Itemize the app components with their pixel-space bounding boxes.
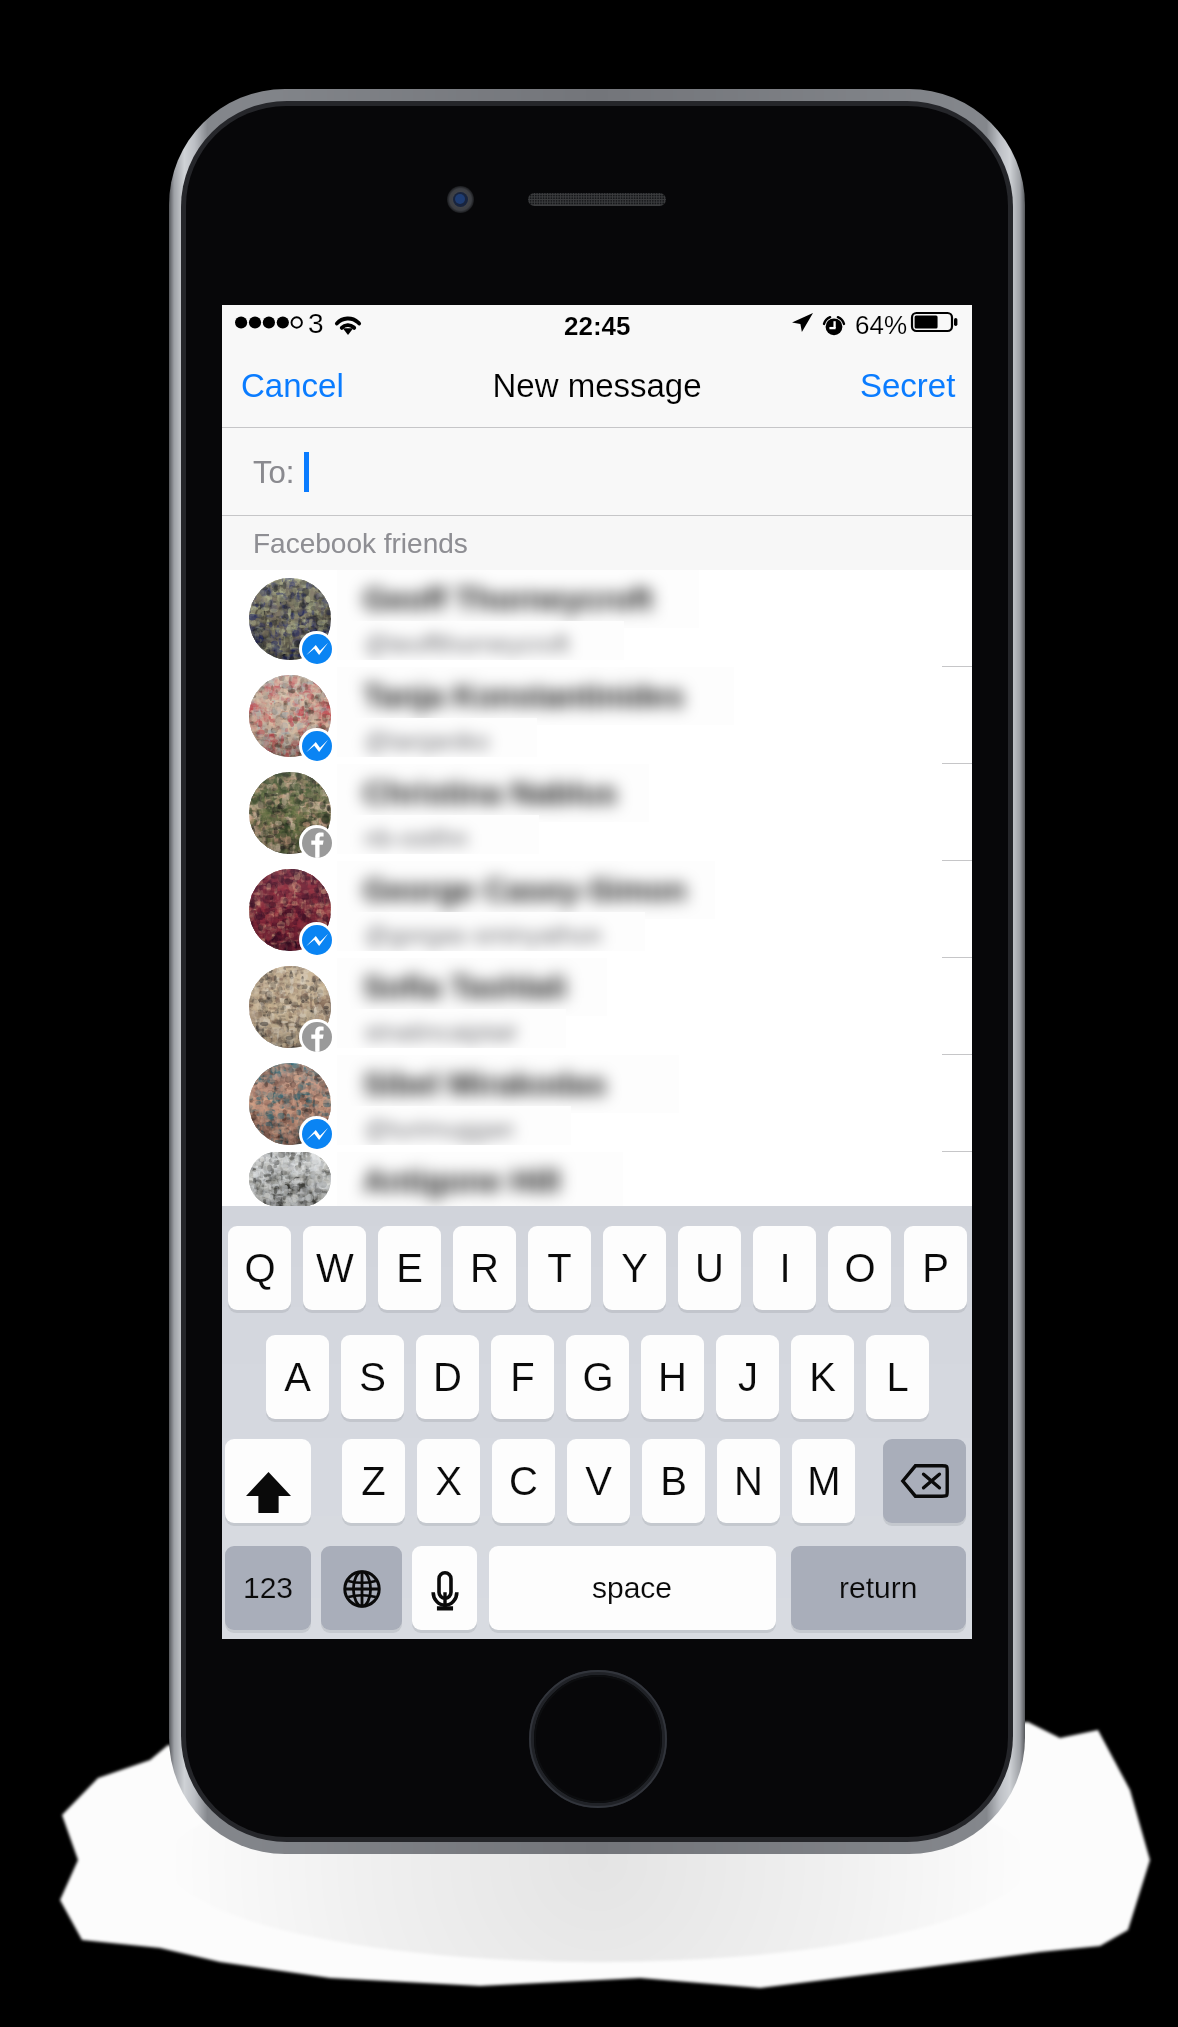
button[interactable]: I xyxy=(753,1226,816,1310)
staticText: space xyxy=(592,1571,673,1605)
staticText: 22:45 xyxy=(564,311,631,340)
staticText: 64% xyxy=(855,310,908,339)
staticText: S xyxy=(359,1355,386,1400)
staticText: W xyxy=(316,1246,354,1291)
button[interactable]: T xyxy=(528,1226,591,1310)
button[interactable]: W xyxy=(303,1226,366,1310)
button[interactable]: Tanja Konstantinides xyxy=(222,667,972,764)
button[interactable]: N xyxy=(717,1439,780,1523)
staticText: L xyxy=(886,1355,909,1400)
button[interactable]: Backspace xyxy=(883,1439,966,1523)
button[interactable]: Shift xyxy=(225,1439,311,1523)
button[interactable]: Y xyxy=(603,1226,666,1310)
staticText: U xyxy=(695,1246,724,1291)
staticText: K xyxy=(809,1355,836,1400)
button[interactable]: J xyxy=(716,1335,779,1419)
staticText: H xyxy=(658,1355,687,1400)
button[interactable]: U xyxy=(678,1226,741,1310)
staticText: Antigone Hill xyxy=(363,1163,561,1199)
staticText: A xyxy=(284,1355,311,1400)
staticText: return xyxy=(839,1571,918,1605)
button[interactable]: Cancel xyxy=(222,352,364,421)
button[interactable]: O xyxy=(828,1226,891,1310)
staticText: @tanjaniko xyxy=(364,727,490,755)
staticText: 3 xyxy=(308,308,324,339)
button[interactable]: Secret xyxy=(840,352,972,421)
staticText: Secret xyxy=(860,367,956,404)
button[interactable]: Sofia Tashlali xyxy=(222,958,972,1055)
staticText: X xyxy=(435,1459,462,1504)
staticText: @teoffthorneycroft xyxy=(364,630,570,658)
staticText: Geoff Thorneycroft xyxy=(363,581,653,617)
button[interactable]: Switch keyboard language xyxy=(321,1546,402,1630)
button[interactable]: E xyxy=(378,1226,441,1310)
staticText: Q xyxy=(244,1246,276,1291)
staticText: B xyxy=(660,1459,687,1504)
staticText: J xyxy=(738,1355,758,1400)
button[interactable]: To: xyxy=(222,428,972,516)
staticText: F xyxy=(510,1355,535,1400)
button[interactable]: George Casey-Simon xyxy=(222,861,972,958)
staticText: O xyxy=(844,1246,876,1291)
button[interactable]: Antigone Hill xyxy=(222,1152,972,1206)
staticText: nb-ostthn xyxy=(364,824,469,852)
staticText: To: xyxy=(253,455,295,490)
staticText: George Casey-Simon xyxy=(363,872,687,908)
button[interactable]: space xyxy=(489,1546,776,1630)
button[interactable]: G xyxy=(566,1335,629,1419)
button[interactable]: L xyxy=(866,1335,929,1419)
staticText: Sofia Tashlali xyxy=(363,969,567,1005)
staticText: V xyxy=(585,1459,612,1504)
staticText: D xyxy=(433,1355,462,1400)
button[interactable]: P xyxy=(904,1226,967,1310)
staticText: New message xyxy=(492,367,702,404)
button[interactable]: V xyxy=(567,1439,630,1523)
staticText: E xyxy=(396,1246,423,1291)
button[interactable]: D xyxy=(416,1335,479,1419)
button[interactable]: Christina Nablus xyxy=(222,764,972,861)
button[interactable]: Z xyxy=(342,1439,405,1523)
button[interactable]: X xyxy=(417,1439,480,1523)
button[interactable]: 123 xyxy=(225,1546,311,1630)
staticText: Facebook friends xyxy=(253,528,468,559)
button[interactable]: A xyxy=(266,1335,329,1419)
button[interactable]: Q xyxy=(228,1226,291,1310)
staticText: @gorgas-sminyathon xyxy=(364,921,602,949)
staticText: Cancel xyxy=(241,367,344,404)
staticText: @turimuggan xyxy=(364,1115,515,1143)
button[interactable]: return xyxy=(791,1546,966,1630)
button[interactable]: K xyxy=(791,1335,854,1419)
button[interactable]: Geoff Thorneycroft xyxy=(222,570,972,667)
button[interactable]: F xyxy=(491,1335,554,1419)
button[interactable]: S xyxy=(341,1335,404,1419)
staticText: G xyxy=(582,1355,614,1400)
button[interactable]: C xyxy=(492,1439,555,1523)
button[interactable]: M xyxy=(792,1439,855,1523)
staticText: I xyxy=(779,1246,791,1291)
staticText: C xyxy=(509,1459,538,1504)
staticText: N xyxy=(734,1459,763,1504)
button[interactable]: B xyxy=(642,1439,705,1523)
button[interactable]: Sibel Mirakodas xyxy=(222,1055,972,1152)
staticText: R xyxy=(470,1246,499,1291)
staticText: Sibel Mirakodas xyxy=(363,1066,607,1102)
staticText: Y xyxy=(621,1246,648,1291)
staticText: Z xyxy=(361,1459,386,1504)
staticText: 123 xyxy=(243,1571,294,1605)
button[interactable]: Dictate xyxy=(412,1546,477,1630)
staticText: T xyxy=(547,1246,572,1291)
button[interactable]: H xyxy=(641,1335,704,1419)
staticText: P xyxy=(922,1246,949,1291)
button[interactable]: R xyxy=(453,1226,516,1310)
staticText: M xyxy=(807,1459,841,1504)
staticText: Tanja Konstantinides xyxy=(363,678,685,714)
staticText: Christina Nablus xyxy=(363,775,618,811)
staticText: stnatincaiptair xyxy=(364,1018,519,1046)
